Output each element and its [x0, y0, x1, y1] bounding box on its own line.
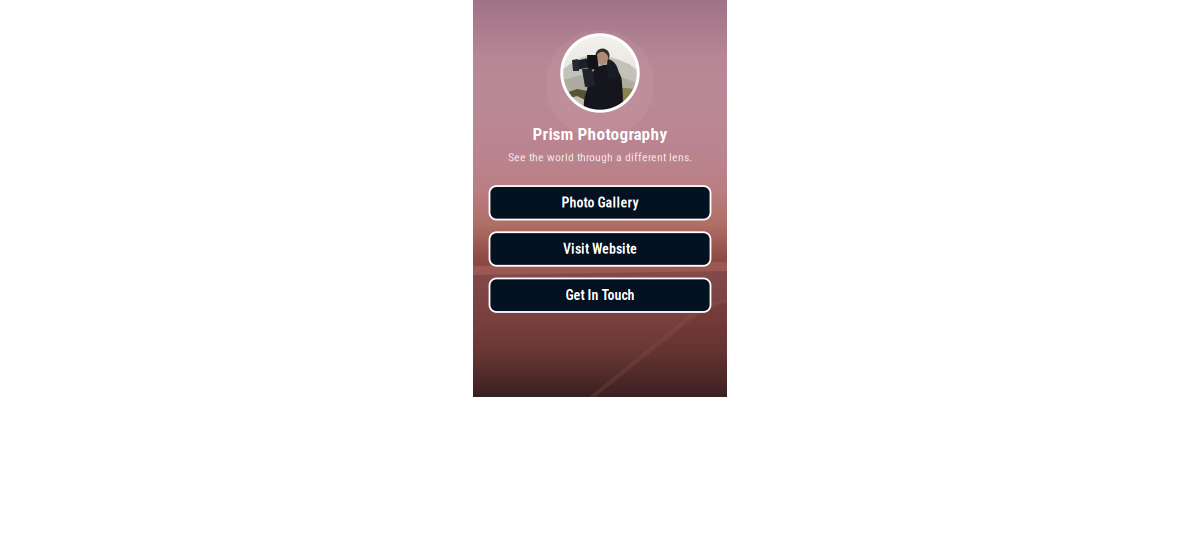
button[interactable]: Photo Gallery [489, 186, 710, 220]
button[interactable]: Visit Website [489, 232, 710, 266]
staticText: Photo Gallery [561, 195, 638, 211]
staticText: Prism Photography [532, 124, 667, 144]
staticText: See the world through a different lens. [508, 150, 692, 164]
button[interactable]: Get In Touch [489, 278, 710, 312]
staticText: Visit Website [563, 241, 637, 257]
staticText: Get In Touch [565, 287, 634, 303]
